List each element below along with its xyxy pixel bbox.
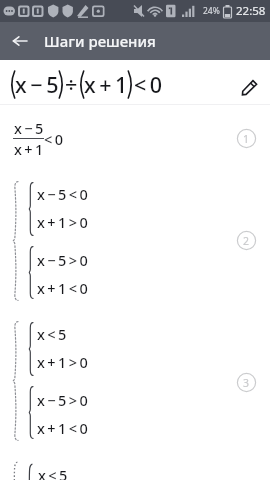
staticText: ÷: [65, 70, 78, 99]
staticText: x + 1: [84, 70, 128, 99]
staticText: x + 1 < 0: [37, 418, 88, 438]
staticText: < 0: [134, 70, 163, 99]
staticText: x + 1 < 0: [37, 278, 88, 298]
staticText: < 0: [44, 129, 63, 149]
button[interactable]: 3: [236, 372, 257, 393]
staticText: x − 5 > 0: [37, 390, 88, 410]
staticText: x + 1: [14, 139, 44, 159]
staticText: x − 5: [15, 70, 59, 99]
staticText: 24%: [203, 5, 220, 17]
staticText: Шаги решения: [44, 31, 156, 51]
staticText: 2: [243, 234, 250, 248]
staticText: x − 5: [14, 118, 44, 138]
staticText: 22:58: [236, 3, 266, 19]
staticText: x + 1 > 0: [37, 352, 88, 372]
staticText: x − 5 > 0: [37, 250, 88, 270]
staticText: x − 5 < 0: [37, 184, 88, 204]
staticText: 3: [243, 376, 250, 390]
staticText: x + 1 > 0: [37, 212, 88, 232]
button[interactable]: 1: [236, 128, 257, 149]
button[interactable]: 2: [236, 230, 257, 251]
staticText: x < 5: [37, 324, 67, 344]
staticText: 1: [243, 132, 250, 146]
button[interactable]: Back: [0, 22, 40, 60]
button[interactable]: Edit expression: [238, 76, 260, 98]
staticText: x < 5: [38, 465, 68, 480]
